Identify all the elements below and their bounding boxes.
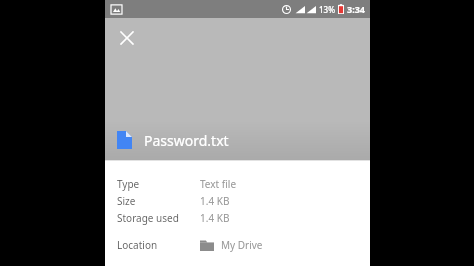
staticText: Size <box>117 194 136 208</box>
staticText: Password.txt <box>144 131 229 150</box>
staticText: Location <box>117 238 158 252</box>
button[interactable]: Close <box>113 24 141 52</box>
button[interactable]: Type <box>105 175 370 192</box>
staticText: My Drive <box>221 238 263 252</box>
staticText: 13% <box>319 4 335 15</box>
button[interactable]: Storage used <box>105 209 370 226</box>
staticText: 1.4 KB <box>200 211 230 225</box>
staticText: 1.4 KB <box>200 194 230 208</box>
staticText: Type <box>117 177 140 191</box>
other: Screenshot captured <box>111 4 122 15</box>
button[interactable]: Password.txt <box>105 120 370 160</box>
staticText: 3:34 <box>347 3 365 15</box>
button[interactable]: Location <box>105 236 370 253</box>
staticText: Text file <box>200 177 237 191</box>
button[interactable]: Size <box>105 192 370 209</box>
staticText: Storage used <box>117 211 179 225</box>
